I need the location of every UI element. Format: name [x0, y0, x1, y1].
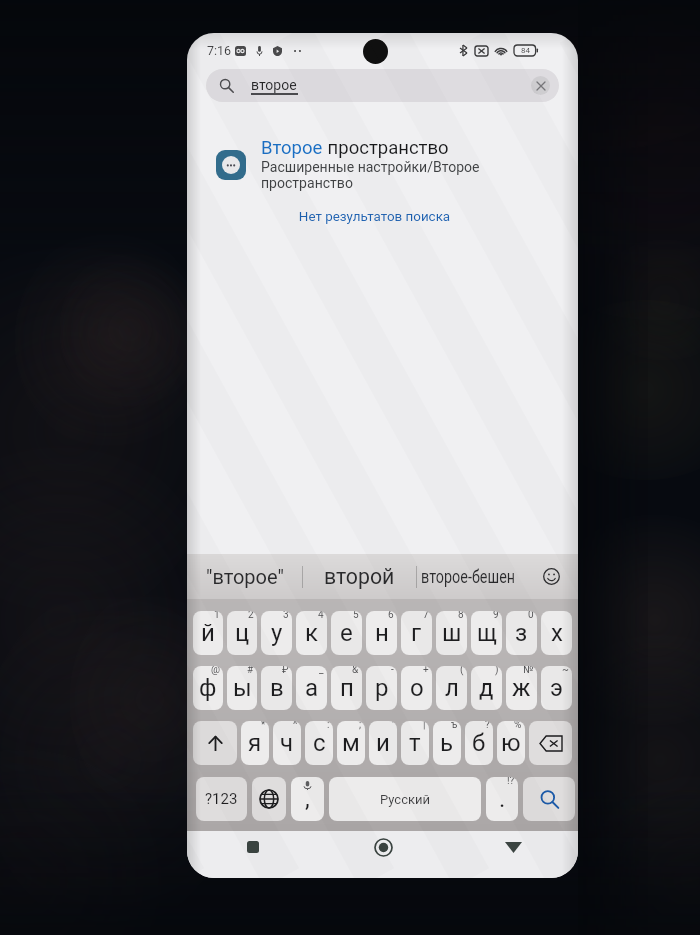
staticText: второе-бешенства — [421, 566, 514, 587]
staticText: м — [342, 729, 360, 757]
button[interactable]: ; — [337, 721, 365, 765]
button[interactable]: 4 — [296, 611, 327, 655]
staticText: ₽ — [282, 666, 289, 676]
button[interactable]: 5 — [331, 611, 362, 655]
button[interactable]: Clear search — [531, 76, 550, 95]
button[interactable]: ^ — [273, 721, 301, 765]
staticText: !? — [507, 777, 515, 787]
button[interactable]: ?123 — [196, 777, 247, 821]
button[interactable]: № — [506, 666, 537, 710]
button[interactable]: Back — [448, 831, 578, 863]
button[interactable]: # — [227, 666, 257, 710]
staticText: 5 — [353, 611, 359, 621]
staticText: щ — [477, 619, 497, 647]
button[interactable]: Второе — [187, 137, 578, 191]
staticText: & — [352, 666, 359, 676]
button[interactable]: % — [497, 721, 525, 765]
staticText: у — [271, 619, 283, 647]
button[interactable]: 0 — [506, 611, 537, 655]
staticText: с — [313, 729, 326, 757]
button[interactable]: Search — [523, 777, 575, 821]
staticText: я — [248, 729, 262, 757]
staticText: 1 — [214, 611, 220, 621]
staticText: Второе — [261, 137, 323, 159]
staticText: ? — [485, 721, 490, 731]
button[interactable]: Backspace — [529, 721, 572, 765]
staticText: % — [514, 721, 522, 731]
button[interactable]: - — [366, 666, 397, 710]
staticText: х — [551, 619, 563, 647]
button[interactable]: Shift — [193, 721, 237, 765]
staticText: , — [305, 785, 310, 813]
staticText: л — [445, 674, 459, 702]
button[interactable]: @ — [193, 666, 223, 710]
staticText: а — [305, 674, 319, 702]
button[interactable]: ~ — [541, 666, 572, 710]
staticText: № — [523, 666, 534, 676]
button[interactable]: ) — [471, 666, 502, 710]
staticText: ; — [359, 721, 362, 731]
staticText: г — [411, 619, 422, 647]
staticText: ) — [495, 666, 499, 676]
button[interactable]: 1 — [193, 611, 223, 655]
button[interactable]: 3 — [261, 611, 292, 655]
staticText: 6 — [388, 611, 394, 621]
staticText: @ — [211, 666, 220, 676]
staticText: пространство — [261, 175, 353, 191]
button[interactable]: второе — [206, 69, 559, 102]
staticText: ч — [280, 729, 294, 757]
staticText: 4 — [318, 611, 324, 621]
staticText: 7 — [423, 611, 429, 621]
staticText: 7:16 — [207, 43, 232, 58]
staticText: н — [375, 619, 389, 647]
staticText: ъ — [451, 721, 458, 731]
button[interactable]: Switch language — [252, 777, 286, 821]
button[interactable]: 9 — [471, 611, 502, 655]
button[interactable]: ? — [465, 721, 493, 765]
staticText: . — [499, 785, 506, 813]
staticText: ( — [460, 666, 464, 676]
button[interactable]: ₽ — [261, 666, 292, 710]
staticText: и — [376, 729, 390, 757]
button[interactable]: Русский — [329, 777, 481, 821]
staticText: второе — [251, 77, 297, 93]
button[interactable]: ( — [436, 666, 467, 710]
button[interactable]: х — [541, 611, 572, 655]
staticText: 0 — [528, 611, 534, 621]
staticText: ж — [512, 674, 531, 702]
button[interactable]: 7 — [401, 611, 432, 655]
button[interactable]: Home — [318, 831, 448, 863]
staticText: о — [410, 674, 424, 702]
button[interactable]: _ — [296, 666, 327, 710]
staticText: д — [479, 674, 494, 702]
button[interactable]: * — [241, 721, 269, 765]
button[interactable]: : — [305, 721, 333, 765]
staticText: "второе" — [206, 565, 284, 588]
staticText: * — [261, 721, 266, 731]
button[interactable]: | — [401, 721, 429, 765]
button[interactable]: ' — [369, 721, 397, 765]
button[interactable]: 2 — [227, 611, 257, 655]
button[interactable]: & — [331, 666, 362, 710]
button[interactable]: 6 — [366, 611, 397, 655]
staticText: к — [305, 619, 318, 647]
staticText: р — [375, 674, 389, 702]
staticText: б — [472, 729, 486, 757]
staticText: й — [201, 619, 215, 647]
staticText: + — [423, 666, 429, 676]
button[interactable]: Emoji — [533, 554, 569, 599]
button[interactable]: , — [291, 777, 324, 821]
staticText: _ — [319, 666, 324, 676]
staticText: 3 — [283, 611, 289, 621]
button[interactable]: второе-бешенства — [417, 554, 533, 599]
staticText: Русский — [380, 792, 431, 807]
button[interactable]: второй — [303, 554, 416, 599]
button[interactable]: !? — [486, 777, 518, 821]
button[interactable]: + — [401, 666, 432, 710]
button[interactable]: Recents — [187, 831, 318, 863]
button[interactable]: "второе" — [187, 554, 302, 599]
staticText: ь — [440, 729, 454, 757]
button[interactable]: ъ — [433, 721, 461, 765]
staticText: ц — [235, 619, 250, 647]
button[interactable]: 8 — [436, 611, 467, 655]
